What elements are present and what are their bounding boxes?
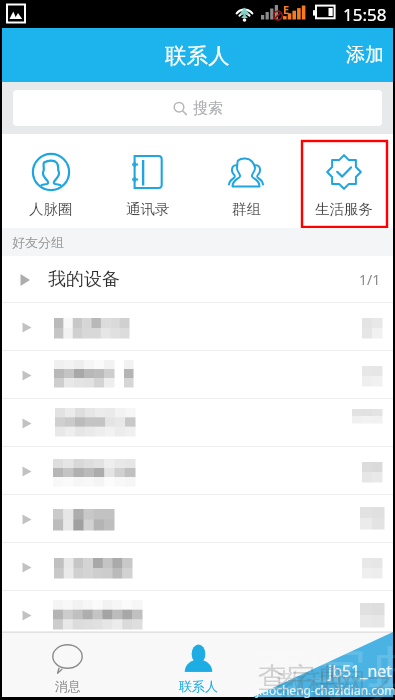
button[interactable] [2,399,393,447]
staticText: 通讯录 [126,200,170,218]
staticText: E [283,2,290,17]
button[interactable]: 人脉圈 [2,134,99,228]
button[interactable] [2,591,393,632]
button[interactable] [2,495,393,543]
staticText: 消息 [55,678,81,694]
button[interactable]: 添加 [336,28,393,82]
button[interactable] [2,543,393,591]
button[interactable]: 联系人 [133,633,263,697]
button[interactable]: 搜索 [13,90,382,126]
button[interactable]: 生活服务 [295,134,393,228]
button[interactable]: 我的设备 [2,256,393,303]
staticText: 教程网之家 [276,665,395,700]
staticText: 群组 [232,200,261,218]
button[interactable]: 通讯录 [99,134,197,228]
staticText: 联系人 [165,42,230,69]
staticText: 添加 [346,43,384,67]
staticText: 联系人 [179,678,218,694]
button[interactable]: 消息 [2,633,133,697]
staticText: 好友分组 [12,234,64,250]
staticText: 1/1 [359,270,381,289]
staticText: jiaocheng-chazidian.com [256,682,395,698]
staticText: 我的设备 [48,268,120,291]
button[interactable] [2,351,393,399]
staticText: 15:58 [343,3,387,26]
staticText: 搜索 [193,99,223,118]
staticText: 查字典 [252,638,395,700]
staticText: jb51_net [328,660,393,682]
staticText: 生活服务 [315,200,373,218]
button[interactable] [2,303,393,351]
staticText: 查字典 [258,660,345,697]
staticText: 人脉圈 [29,200,73,218]
button[interactable] [2,447,393,495]
button[interactable]: 群组 [197,134,295,228]
